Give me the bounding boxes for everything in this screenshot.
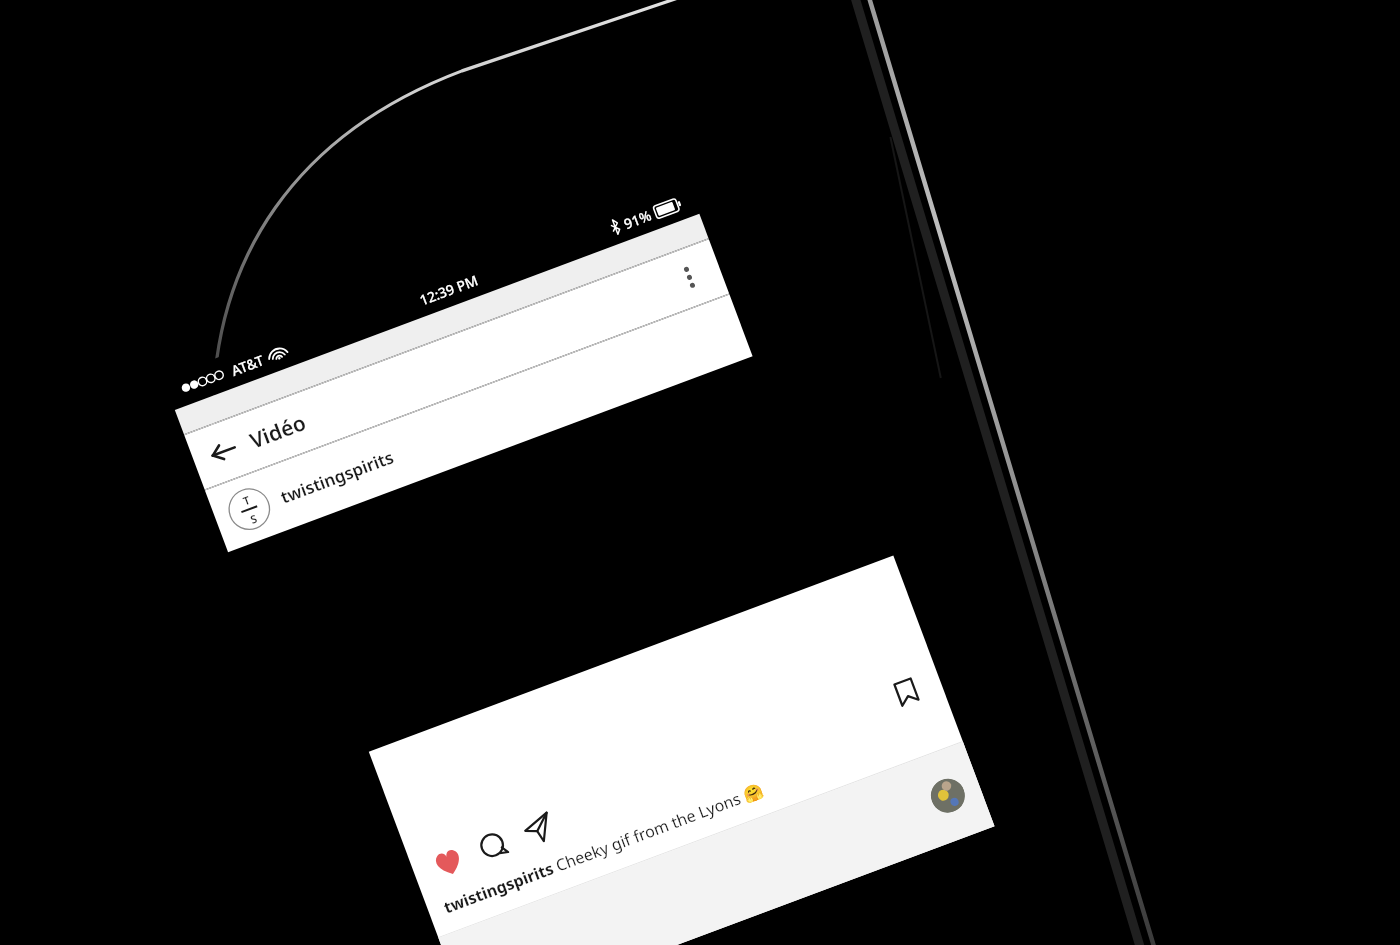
staticText: 91%	[621, 206, 654, 233]
staticText: Vidéo	[246, 408, 310, 455]
staticText: AT&T	[228, 350, 267, 380]
button[interactable]	[438, 742, 995, 945]
button[interactable]: Comment	[463, 815, 525, 877]
staticText: T	[240, 492, 252, 508]
button[interactable]: Save	[875, 661, 937, 723]
button[interactable]: More options	[661, 249, 717, 306]
button[interactable]: Share	[508, 798, 570, 860]
staticText: twistingspirits	[277, 445, 397, 508]
button[interactable]: T	[205, 294, 753, 552]
button[interactable]: twistingspirits Cheeky gif from the Lyon…	[425, 705, 963, 937]
staticText: 12:39 PM	[417, 270, 481, 310]
button[interactable]: Unlike	[418, 832, 480, 894]
button[interactable]: Back	[194, 422, 253, 481]
staticText: S	[247, 511, 259, 527]
staticText: twistingspirits Cheeky gif from the Lyon…	[440, 779, 767, 918]
